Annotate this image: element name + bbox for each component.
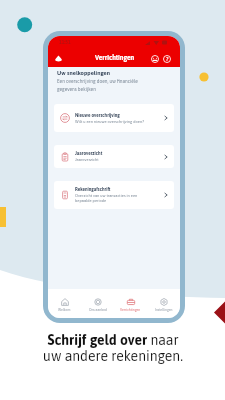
- staticText: 11:51: [59, 39, 71, 45]
- button[interactable]: Rekeningafschrift: [54, 181, 174, 209]
- staticText: Instellingen: [155, 308, 173, 312]
- staticText: Een overschrijving doen, uw financiële g…: [57, 79, 138, 92]
- staticText: Nieuwe overschrijving: [75, 113, 120, 118]
- staticText: Verrichtingen: [120, 308, 141, 312]
- staticText: Overzicht van uw transacties in een bepa…: [75, 193, 138, 203]
- button[interactable]: Ons aanbod: [81, 293, 114, 315]
- button[interactable]: Profile: [149, 53, 160, 64]
- staticText: Ons aanbod: [89, 308, 107, 312]
- staticText: Uw snelkoppelingen: [57, 69, 110, 76]
- button[interactable]: Welkom: [48, 293, 81, 315]
- staticText: ?: [166, 56, 169, 62]
- button[interactable]: Rabobank menu: [53, 53, 64, 64]
- button[interactable]: Instellingen: [147, 293, 180, 315]
- button[interactable]: Help: [161, 53, 172, 64]
- staticText: Jaaroverzicht: [75, 157, 99, 162]
- button[interactable]: Verrichtingen: [114, 293, 147, 315]
- staticText: Jaaroverzicht: [75, 151, 103, 156]
- button[interactable]: Nieuwe overschrijving: [54, 104, 174, 132]
- staticText: Wilt u een nieuwe overschrijving doen?: [75, 119, 144, 124]
- staticText: Verrichtingen: [95, 54, 135, 62]
- staticText: Schrijf geld over naar uw andere rekenin…: [42, 332, 184, 364]
- staticText: Rekeningafschrift: [75, 187, 111, 192]
- button[interactable]: Jaaroverzicht: [54, 145, 174, 168]
- staticText: Welkom: [58, 308, 71, 312]
